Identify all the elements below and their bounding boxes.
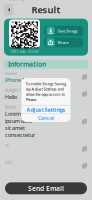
staticText: Share [57, 40, 68, 45]
staticText: BODY [5, 104, 16, 110]
button[interactable]: BODY [0, 102, 92, 140]
staticText: CC [5, 143, 10, 148]
staticText: QR Code - Email [10, 48, 38, 54]
staticText: Hello [5, 93, 17, 100]
staticText: 13:43 [8, 0, 26, 2]
staticText: Adjust Settings [26, 106, 65, 113]
button[interactable]: Save Image [44, 26, 83, 36]
button[interactable]: Adjust Settings [21, 106, 70, 114]
button[interactable]: SUBJECT [0, 85, 92, 102]
staticText: To enable Image Saving, tap Adjust Setti… [25, 81, 66, 102]
button[interactable]: Back [4, 4, 14, 16]
button[interactable]: Share [44, 37, 83, 47]
staticText: Send Email [28, 184, 64, 193]
button[interactable]: CC [0, 141, 92, 157]
staticText: Save Image [57, 28, 77, 33]
staticText: BCC [5, 159, 13, 165]
staticText: SUBJECT [5, 87, 21, 93]
staticText: Lorem ipsum dolor sit amet consectetur [5, 110, 35, 138]
button[interactable]: Send Email [5, 182, 87, 194]
staticText: Cancel [38, 114, 54, 122]
staticText: Device [5, 71, 17, 76]
staticText: Result [31, 3, 60, 16]
button[interactable]: Device [0, 69, 92, 85]
staticText: iPhone 13 [5, 76, 28, 83]
button[interactable]: Cancel [21, 114, 70, 122]
staticText: Information [8, 60, 46, 69]
button[interactable]: BCC [0, 157, 92, 174]
